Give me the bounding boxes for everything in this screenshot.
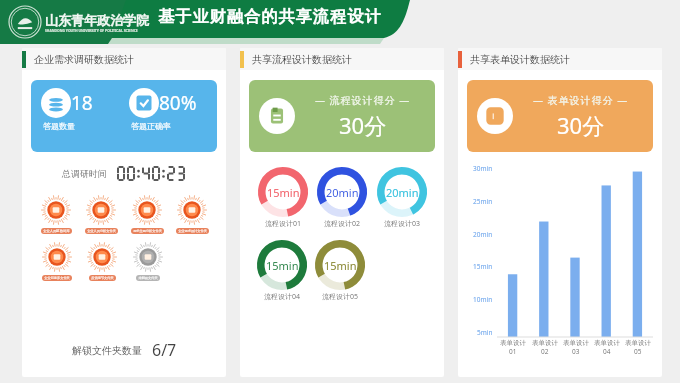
staticText: 25min [473, 197, 493, 206]
staticText: 6/7 [152, 339, 177, 361]
staticText: 30分 [339, 110, 387, 140]
staticText: 表单设计 [500, 339, 526, 347]
staticText: 01 [509, 347, 517, 356]
staticText: 20min [473, 230, 493, 239]
staticText: 总调研时间 [62, 168, 107, 179]
staticText: 30min [473, 164, 493, 173]
button[interactable]: 15min [257, 166, 309, 229]
staticText: 企业问卷库文件夹 [44, 276, 70, 280]
staticText: SHANDONG YOUTH UNIVERSITY OF POLITICAL S… [45, 28, 138, 33]
staticText: 未解锁文件夹 [138, 276, 158, 280]
staticText: 流程设计01 [265, 219, 302, 229]
button[interactable]: — 表单设计得分 — [467, 80, 653, 152]
staticText: 20min [386, 185, 419, 200]
staticText: 03 [572, 347, 580, 356]
staticText: 共享流程设计数据统计 [252, 53, 352, 66]
button[interactable]: — 流程设计得分 — [249, 80, 435, 152]
staticText: 18 [71, 90, 93, 116]
button[interactable]: 未解锁文件夹 [128, 240, 168, 281]
button[interactable]: 共享表单设计数据统计 [458, 48, 662, 70]
staticText: 表单设计 [563, 339, 589, 347]
staticText: 解锁文件夹数量 [72, 344, 142, 357]
button[interactable]: 企业需求调研数据统计 [22, 48, 226, 70]
staticText: — 流程设计得分 — [315, 93, 411, 107]
button[interactable]: 企业需求设计文件夹 [172, 193, 212, 234]
staticText: 表单设计 [532, 339, 558, 347]
staticText: 04 [603, 347, 611, 356]
staticText: 企业需求调研数据统计 [34, 53, 134, 66]
staticText: 基于业财融合的共享流程设计 [158, 7, 382, 27]
staticText: 企业需求设计文件夹 [178, 229, 207, 233]
staticText: 5min [477, 328, 493, 337]
staticText: — 表单设计得分 — [533, 93, 629, 107]
staticText: 05 [634, 347, 642, 356]
button[interactable]: 15min [314, 239, 366, 302]
staticText: 答题数量 [43, 121, 75, 131]
button[interactable]: 企业人员AI 数据库 [36, 193, 76, 234]
staticText: 流程设计03 [384, 219, 421, 229]
staticText: 表单设计 [625, 339, 651, 347]
staticText: 30分 [557, 110, 605, 140]
staticText: 流程设计02 [324, 219, 361, 229]
staticText: 山东青年政治学院 [45, 12, 149, 28]
staticText: 企业人员AI 数据库 [43, 229, 70, 233]
staticText: 共享表单设计数据统计 [470, 53, 570, 66]
staticText: 企业人员分析文件夹 [87, 229, 116, 233]
button[interactable]: 15min [256, 239, 308, 302]
staticText: 20min [326, 185, 359, 200]
staticText: 10min [473, 295, 493, 304]
button[interactable]: 共享流程设计数据统计 [240, 48, 444, 70]
staticText: 15min [266, 258, 299, 273]
staticText: 流程设计05 [322, 292, 359, 302]
staticText: 需求主题分析文件夹 [133, 229, 162, 233]
staticText: 流程设计04 [264, 292, 301, 302]
staticText: 15min [324, 258, 357, 273]
staticText: 80% [159, 90, 197, 116]
staticText: 15min [473, 262, 493, 271]
button[interactable]: 企业问卷库文件夹 [37, 240, 77, 281]
button[interactable]: 20min [376, 166, 428, 229]
staticText: 反馈细节文件夹 [91, 276, 114, 280]
staticText: 答题正确率 [131, 121, 171, 131]
staticText: 15min [267, 185, 300, 200]
button[interactable]: 18 [31, 80, 217, 152]
staticText: 02 [541, 347, 549, 356]
staticText: 表单设计 [594, 339, 620, 347]
button[interactable]: 需求主题分析文件夹 [127, 193, 167, 234]
button[interactable]: 反馈细节文件夹 [82, 240, 122, 281]
button[interactable]: 20min [316, 166, 368, 229]
button[interactable]: 企业人员分析文件夹 [81, 193, 121, 234]
